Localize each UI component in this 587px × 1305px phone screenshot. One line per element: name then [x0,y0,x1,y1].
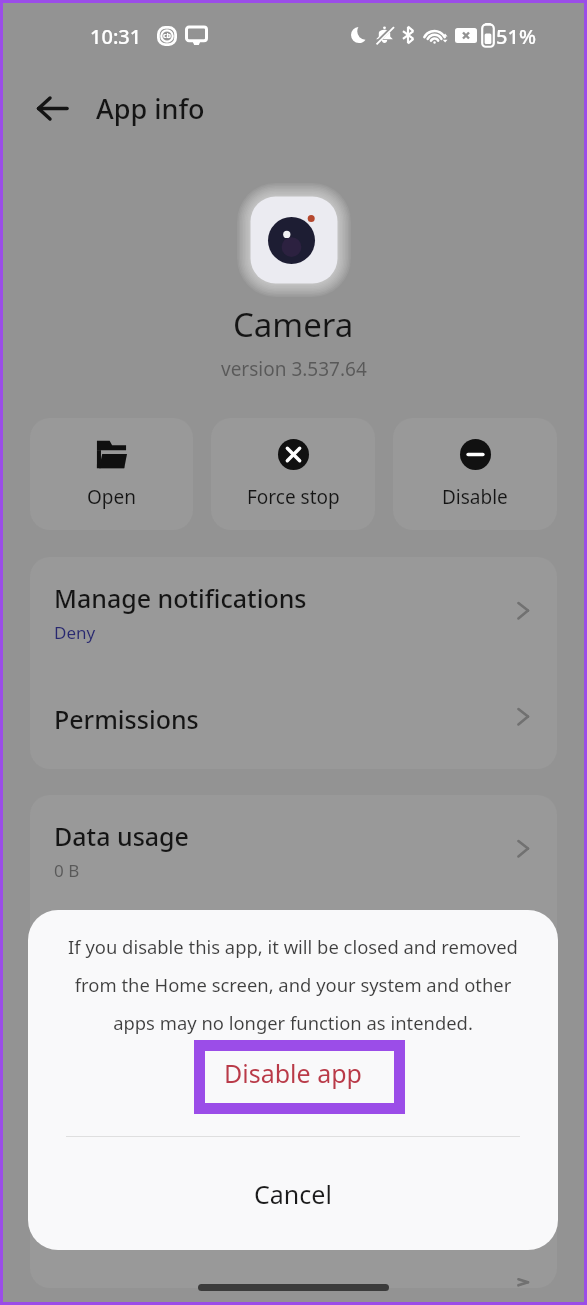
staticText: Open by default [54,1281,246,1288]
button[interactable]: Disable app [28,1035,558,1110]
staticText: 0 B used since Aug 1 [54,1071,218,1094]
button[interactable]: Manage notifications [30,557,557,663]
staticText: 0 B [54,859,80,882]
staticText: Mobile data [54,1031,196,1065]
staticText: Disable [442,484,508,510]
staticText: 10:31 [90,23,142,50]
staticText: version 3.537.64 [221,356,367,382]
button[interactable]: Open [30,418,193,530]
staticText: Disable app [224,1056,362,1090]
button[interactable]: Battery [30,1113,557,1276]
staticText: cb [163,31,172,41]
staticText: Permissions [54,702,199,736]
staticText: Manage notifications [54,581,307,615]
button[interactable]: Storage [30,901,557,1007]
staticText: 51% [496,23,536,50]
button[interactable]: Data usage [30,795,557,901]
button[interactable]: Open by default [30,1276,557,1288]
button[interactable]: Disable [393,418,557,530]
staticText: Open [87,484,136,510]
staticText: Camera [233,302,354,347]
staticText: Storage [54,925,147,959]
staticText: Deny [54,621,96,644]
staticText: Cancel [254,1177,332,1211]
staticText: If you disable this app, it will be clos… [58,934,528,1035]
button[interactable]: Force stop [211,418,375,530]
button[interactable]: Mobile data [30,1007,557,1113]
button[interactable]: Back [24,80,80,136]
staticText: Force stop [247,484,340,510]
staticText: App info [96,90,205,127]
staticText: 44.32 MB used in internal storage [54,965,323,988]
staticText: Data usage [54,819,189,853]
button[interactable]: Permissions [30,663,557,769]
button[interactable]: Cancel [28,1137,558,1250]
